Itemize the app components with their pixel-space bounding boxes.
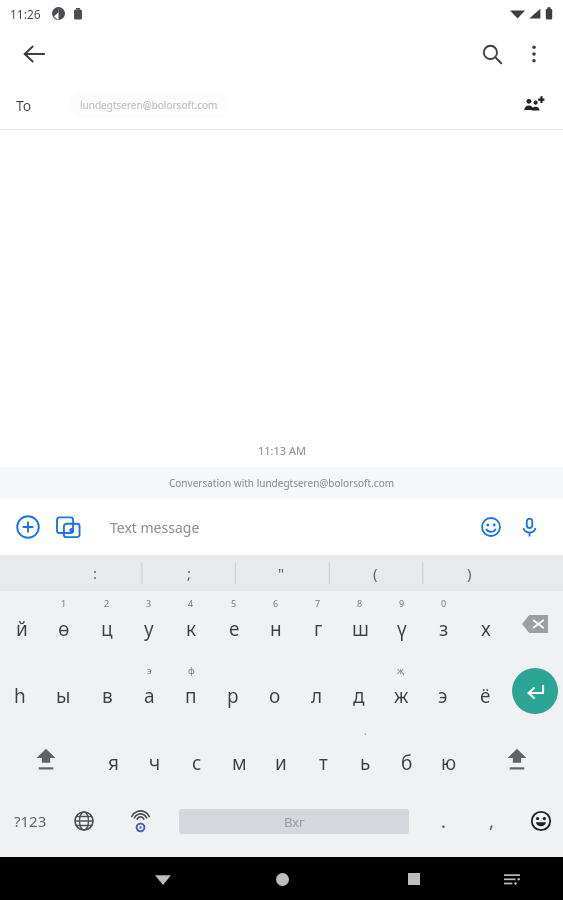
button[interactable]: 9	[381, 596, 423, 652]
staticText: 9	[399, 597, 405, 609]
button[interactable]: 5	[213, 596, 255, 652]
button[interactable]: ы	[42, 663, 84, 719]
button[interactable]: Shift	[21, 730, 71, 786]
button[interactable]: Backspace	[507, 599, 563, 649]
button[interactable]: h	[0, 663, 41, 719]
staticText: 11:13 AM	[258, 443, 306, 458]
button[interactable]: Add people	[513, 85, 553, 125]
button[interactable]: р	[212, 663, 254, 719]
staticText: в	[102, 683, 113, 709]
button[interactable]: э	[422, 663, 464, 719]
button[interactable]: More options	[513, 33, 555, 75]
button[interactable]: л	[296, 663, 338, 719]
button[interactable]: 8	[339, 596, 381, 652]
button[interactable]: ф	[170, 663, 212, 719]
staticText: э	[147, 664, 152, 676]
button[interactable]: э	[128, 663, 170, 719]
button[interactable]: ч	[134, 730, 176, 786]
staticText: м	[232, 750, 247, 776]
staticText: ё	[480, 683, 491, 709]
staticText: 8	[357, 597, 363, 609]
button[interactable]: 6	[255, 596, 297, 652]
button[interactable]: 7	[297, 596, 339, 652]
staticText: о	[269, 683, 281, 709]
staticText: с	[192, 750, 202, 776]
staticText: ;	[187, 563, 192, 583]
button[interactable]: Back	[144, 860, 182, 898]
button[interactable]: Search	[471, 33, 513, 75]
staticText: .	[441, 809, 446, 834]
staticText: To	[16, 96, 32, 115]
staticText: л	[311, 683, 323, 709]
button[interactable]: 2	[86, 596, 128, 652]
button[interactable]: Emoji keyboard	[521, 799, 561, 843]
button[interactable]: ю	[428, 730, 470, 786]
button[interactable]: ё	[464, 663, 506, 719]
button[interactable]: я	[92, 730, 134, 786]
staticText: е	[229, 616, 240, 642]
staticText: и	[275, 750, 287, 776]
staticText: п	[185, 683, 197, 709]
button[interactable]: "	[241, 555, 321, 591]
button[interactable]: Text message	[94, 506, 555, 548]
button[interactable]: х	[465, 596, 507, 652]
button[interactable]: Home	[263, 860, 301, 898]
staticText: 2	[104, 597, 110, 609]
staticText: ы	[56, 683, 71, 709]
button[interactable]: (	[335, 555, 415, 591]
staticText: 11:26	[10, 6, 41, 22]
staticText: )	[467, 563, 472, 583]
staticText: у	[144, 616, 154, 642]
staticText: Text message	[110, 518, 472, 537]
staticText: 3	[146, 597, 152, 609]
button[interactable]: ,	[471, 799, 511, 843]
button[interactable]: м	[218, 730, 260, 786]
button[interactable]: .	[423, 799, 463, 843]
button[interactable]: Insert emoji	[472, 508, 510, 546]
button[interactable]: о	[254, 663, 296, 719]
button[interactable]: lundegtseren@bolorsoft.com	[68, 92, 230, 118]
button[interactable]: Change keyboard language	[62, 799, 106, 843]
staticText: :	[93, 563, 98, 583]
button[interactable]: 0	[423, 596, 465, 652]
button[interactable]: д	[338, 663, 380, 719]
staticText: х	[481, 616, 491, 642]
button[interactable]: т	[302, 730, 344, 786]
staticText: ?123	[14, 811, 47, 831]
button[interactable]: с	[176, 730, 218, 786]
staticText: й	[16, 616, 28, 642]
button[interactable]: и	[260, 730, 302, 786]
button[interactable]: Voice input	[510, 508, 548, 546]
staticText: а	[144, 683, 155, 709]
button[interactable]: Shift	[492, 730, 542, 786]
button[interactable]: `	[344, 730, 386, 786]
staticText: Conversation with lundegtseren@bolorsoft…	[169, 476, 395, 490]
button[interactable]: й	[1, 596, 43, 652]
button[interactable]: Вхг	[179, 809, 409, 834]
button[interactable]: Recent apps	[395, 860, 433, 898]
button[interactable]: б	[386, 730, 428, 786]
button[interactable]: ?123	[3, 798, 57, 844]
staticText: т	[319, 750, 328, 776]
button[interactable]: ;	[149, 555, 229, 591]
button[interactable]: 1	[43, 596, 85, 652]
button[interactable]: Take photo	[48, 507, 88, 547]
staticText: д	[353, 683, 365, 709]
staticText: ж	[394, 683, 409, 709]
staticText: р	[227, 683, 239, 709]
staticText: ь	[360, 750, 371, 776]
button[interactable]: Voice typing	[118, 799, 162, 843]
button[interactable]: Enter	[512, 668, 558, 714]
button[interactable]: Switch keyboard	[493, 860, 531, 898]
button[interactable]: Back	[12, 32, 56, 76]
button[interactable]: Add attachment	[8, 507, 48, 547]
button[interactable]: :	[55, 555, 135, 591]
button[interactable]: 4	[170, 596, 212, 652]
staticText: (	[373, 563, 378, 583]
button[interactable]: )	[429, 555, 509, 591]
button[interactable]: җ	[380, 663, 422, 719]
staticText: 1	[61, 597, 67, 609]
staticText: э	[438, 683, 448, 709]
button[interactable]: 3	[128, 596, 170, 652]
button[interactable]: в	[86, 663, 128, 719]
